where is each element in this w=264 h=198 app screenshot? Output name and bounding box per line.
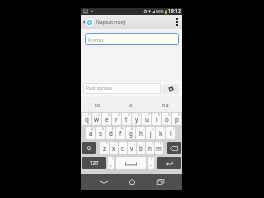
staticText: 4 [118,113,120,117]
button[interactable]: to [81,97,114,112]
button[interactable]: q [82,113,91,125]
button[interactable]: h [136,127,145,139]
button[interactable]: l [166,127,175,139]
staticText: u [145,115,149,123]
button[interactable]: Komu: [85,33,179,45]
staticText: b [139,144,143,152]
staticText: + [152,127,154,131]
button[interactable]: g [126,127,135,139]
staticText: t [125,115,128,123]
staticText: 7 [148,113,150,117]
button[interactable]: , [108,157,114,169]
staticText: a [89,129,93,137]
staticText: Psát zprávu [86,85,113,92]
button[interactable]: Enter [157,157,181,169]
staticText: y [135,115,139,123]
staticText: c [121,144,125,152]
staticText: 65% [156,9,164,14]
staticText: ! [152,142,153,146]
staticText: a [129,101,133,108]
button[interactable]: y [132,113,141,125]
button[interactable]: a [114,97,148,112]
staticText: : [134,142,135,146]
staticText: 5 [128,113,130,117]
staticText: 19:12 [168,8,181,15]
staticText: 12!? [90,160,99,166]
button[interactable]: Back [82,15,93,29]
staticText: z [103,144,106,152]
staticText: n [148,144,152,152]
button[interactable]: Attach [162,84,179,94]
button[interactable]: Home [118,174,146,190]
staticText: ( [163,127,164,131]
staticText: q [85,115,89,123]
staticText: s [99,129,103,137]
staticText: # [102,127,104,131]
staticText: j [150,129,152,137]
staticText: 0 [178,113,180,117]
button[interactable]: . [148,157,154,169]
staticText: g [129,129,133,137]
staticText: v [130,144,134,152]
staticText: @ [91,127,94,131]
button[interactable]: Symbols [82,157,106,169]
button[interactable]: n [146,142,154,154]
button[interactable]: z [100,142,109,154]
staticText: Napsat nový [96,19,126,26]
staticText: ' [125,142,126,146]
staticText: to [95,101,101,108]
staticText: x [112,144,116,152]
staticText: i [156,115,158,123]
button[interactable]: Back [90,174,118,190]
staticText: r [115,115,118,123]
button[interactable]: u [142,113,151,125]
staticText: na [162,101,169,108]
staticText: k [159,129,163,137]
staticText: 2 [98,113,100,117]
staticText: ) [173,127,174,131]
staticText: " [115,142,117,146]
button[interactable]: d [106,127,115,139]
button[interactable]: w [92,113,101,125]
button[interactable]: Shift [82,142,96,154]
button[interactable]: f [116,127,125,139]
button[interactable]: More options [171,15,182,29]
button[interactable]: j [146,127,155,139]
staticText: % [121,127,124,131]
staticText: 6 [138,113,140,117]
staticText: 1 [88,113,90,117]
staticText: h [139,129,143,137]
button[interactable]: Psát zprávu [83,83,161,94]
staticText: o [165,115,169,123]
button[interactable]: e [102,113,111,125]
button[interactable]: na [148,97,182,112]
button[interactable]: s [96,127,105,139]
staticText: * [106,142,108,146]
button[interactable]: v [128,142,136,154]
button[interactable]: Backspace [167,142,181,154]
button[interactable]: t [122,113,131,125]
staticText: d [109,129,113,137]
button[interactable]: r [112,113,121,125]
staticText: - [143,127,144,131]
staticText: ! [112,157,113,161]
button[interactable]: m [155,142,163,154]
button[interactable]: k [156,127,165,139]
button[interactable]: p [172,113,181,125]
staticText: e [105,115,109,123]
button[interactable]: x [110,142,118,154]
button[interactable]: b [137,142,145,154]
staticText: Komu: [88,36,105,43]
staticText: 9 [168,113,170,117]
button[interactable]: o [162,113,171,125]
button[interactable]: a [86,127,95,139]
staticText: l [170,129,172,137]
staticText: p [175,115,179,123]
button[interactable]: Recents [146,174,174,190]
staticText: 3 [108,113,110,117]
button[interactable]: i [152,113,161,125]
button[interactable] [116,157,146,169]
staticText: & [131,127,134,131]
staticText: f [119,129,122,137]
button[interactable]: c [119,142,127,154]
